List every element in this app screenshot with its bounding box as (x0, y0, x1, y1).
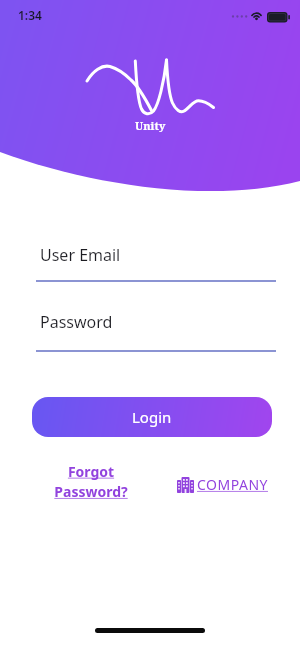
staticText: Forgot Password? (54, 462, 128, 501)
staticText: User Email (40, 244, 121, 266)
button[interactable]: Login (32, 397, 272, 437)
button[interactable]: User Email (36, 244, 276, 284)
staticText: 1:34 (18, 7, 42, 23)
staticText: Login (132, 407, 172, 427)
button[interactable]: Forgot Password? (41, 462, 141, 501)
button[interactable]: Password (36, 311, 276, 353)
staticText: Unity (135, 118, 166, 133)
button[interactable]: COMPANY (177, 475, 268, 494)
staticText: COMPANY (197, 475, 268, 494)
staticText: Password (40, 311, 113, 333)
